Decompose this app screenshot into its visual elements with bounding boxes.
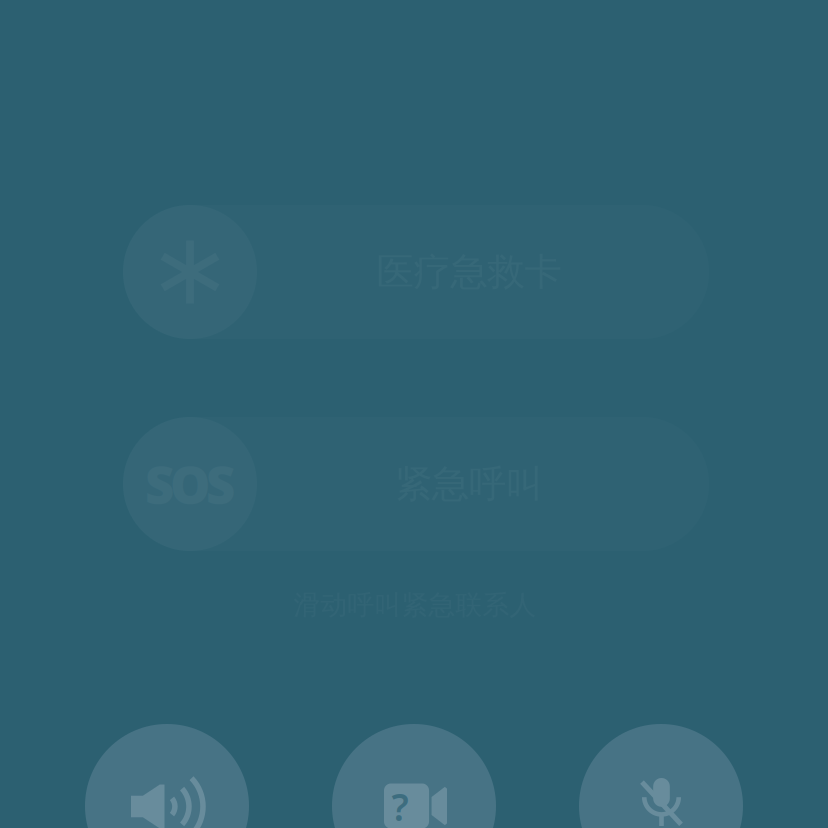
staticText: SOS <box>145 450 235 518</box>
button[interactable]: 紧急呼叫 <box>123 417 709 551</box>
button[interactable]: Mute <box>579 724 743 828</box>
staticText: ? <box>391 782 408 828</box>
button[interactable]: FaceTime <box>332 724 496 828</box>
button[interactable]: Speaker <box>85 724 249 828</box>
